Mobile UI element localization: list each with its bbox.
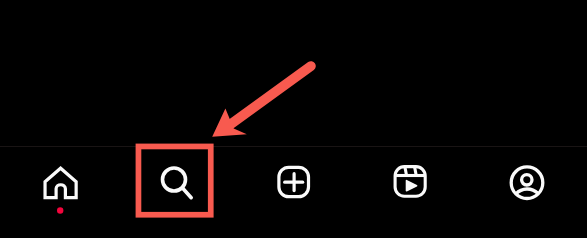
button[interactable]: Reels <box>353 147 470 238</box>
button[interactable]: Create <box>236 147 353 238</box>
button[interactable]: Home <box>0 147 118 238</box>
button[interactable]: Search <box>118 147 236 238</box>
button[interactable]: Profile <box>470 147 587 238</box>
